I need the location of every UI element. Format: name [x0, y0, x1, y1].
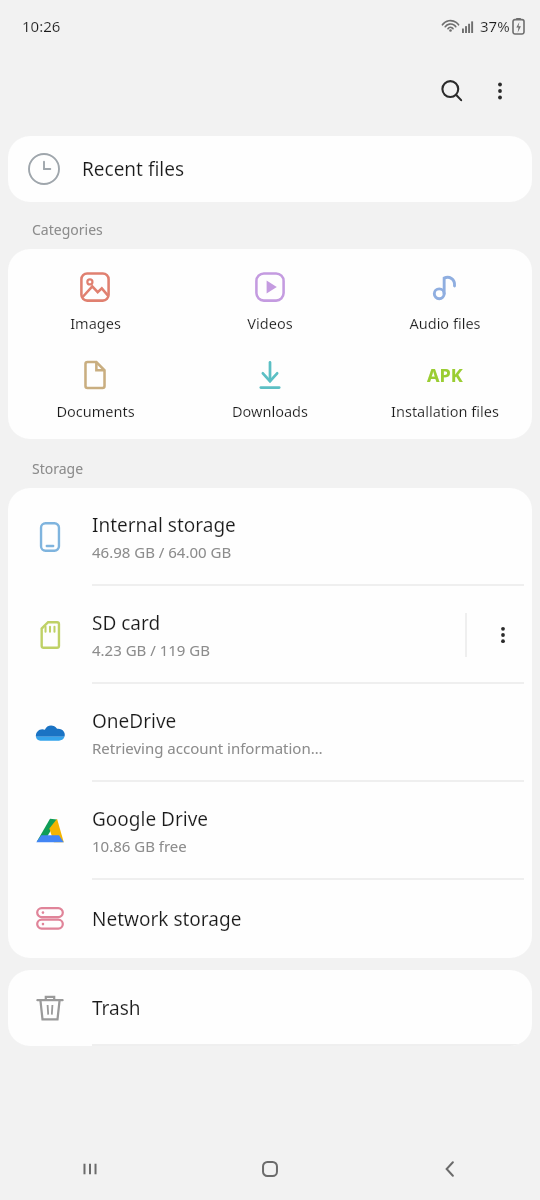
button[interactable]: Images — [8, 261, 182, 339]
staticText: Images — [70, 313, 121, 333]
staticText: Recent files — [82, 156, 185, 182]
button[interactable]: Internal storage — [8, 488, 532, 586]
button[interactable]: Recents — [0, 1138, 180, 1200]
button[interactable]: OneDrive — [8, 684, 532, 782]
staticText: 37% — [480, 16, 510, 36]
button[interactable]: Google Drive — [8, 782, 532, 880]
staticText: Internal storage — [92, 512, 236, 538]
staticText: Google Drive — [92, 806, 209, 832]
button[interactable]: Network storage — [8, 880, 532, 958]
button[interactable]: SD card options — [474, 586, 532, 684]
button[interactable]: Search — [428, 67, 476, 115]
staticText: 46.98 GB / 64.00 GB — [92, 542, 232, 562]
staticText: Downloads — [232, 401, 308, 421]
button[interactable]: Trash — [8, 970, 532, 1046]
button[interactable]: Downloads — [182, 349, 357, 427]
button[interactable]: Audio files — [357, 261, 532, 339]
staticText: Categories — [32, 220, 103, 239]
staticText: OneDrive — [92, 708, 177, 734]
button[interactable]: APK — [357, 349, 532, 427]
button[interactable]: SD card — [8, 586, 532, 684]
button[interactable]: Home — [180, 1138, 360, 1200]
staticText: Trash — [92, 995, 141, 1021]
staticText: 10:26 — [22, 16, 61, 36]
button[interactable]: Documents — [8, 349, 182, 427]
button[interactable]: Back — [360, 1138, 540, 1200]
staticText: Storage — [32, 459, 84, 478]
staticText: 4.23 GB / 119 GB — [92, 640, 211, 660]
button[interactable]: Videos — [182, 261, 357, 339]
button[interactable]: Recent files — [8, 136, 532, 202]
staticText: SD card — [92, 610, 161, 636]
staticText: Videos — [247, 313, 293, 333]
staticText: Network storage — [92, 906, 242, 932]
staticText: 10.86 GB free — [92, 836, 187, 856]
staticText: Installation files — [391, 401, 499, 421]
staticText: Documents — [56, 401, 135, 421]
staticText: APK — [427, 363, 463, 388]
staticText: Retrieving account information… — [92, 738, 323, 758]
staticText: Audio files — [409, 313, 481, 333]
button[interactable]: More options — [476, 67, 524, 115]
